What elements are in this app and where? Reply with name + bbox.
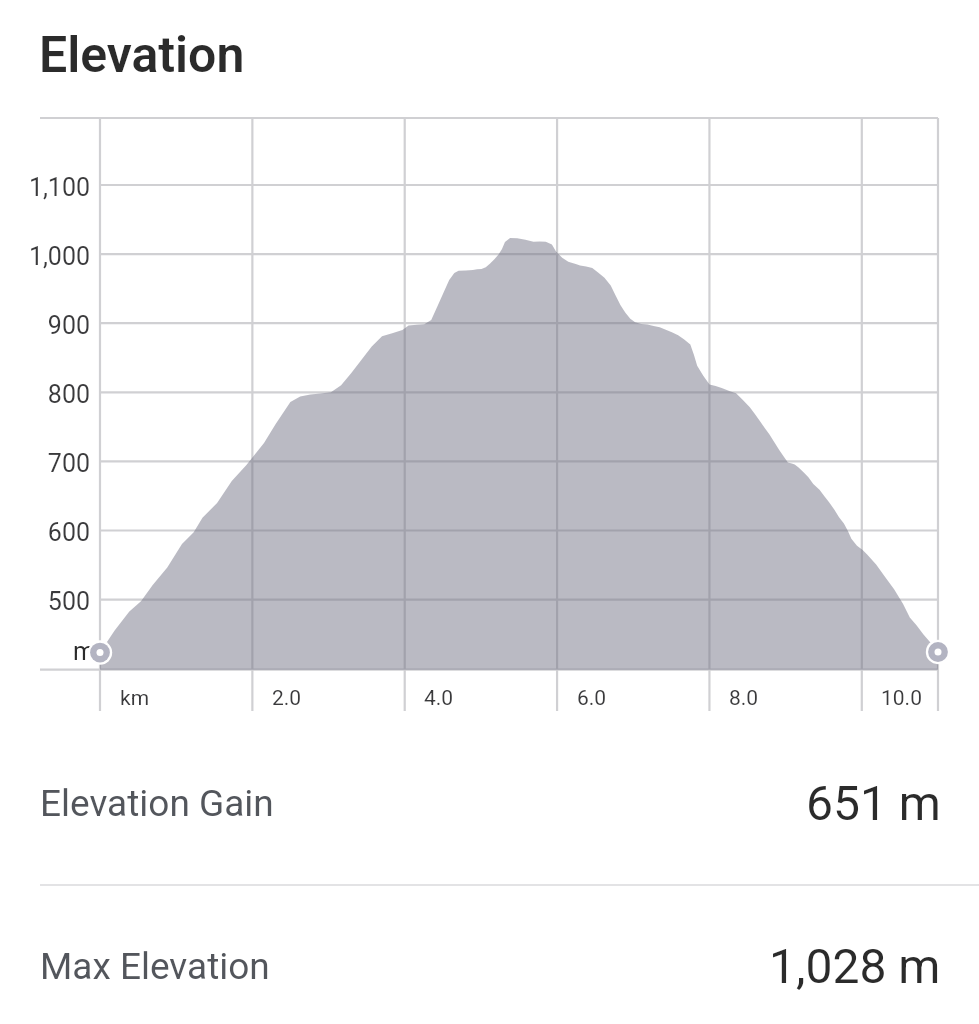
button[interactable]: Elevation Gain [0,723,979,884]
staticText: 6.0 [577,686,607,711]
staticText: 900 [0,311,90,340]
button[interactable]: Max Elevation [0,886,979,1024]
button[interactable]: Elevation profile chart [0,108,979,722]
staticText: m [0,637,95,666]
staticText: 700 [0,449,90,478]
staticText: 651 m [806,775,941,831]
staticText: 8.0 [729,686,759,711]
staticText: Elevation Gain [40,782,274,825]
staticText: 800 [0,380,90,409]
staticText: Elevation [39,26,245,85]
staticText: Max Elevation [40,945,270,988]
staticText: 2.0 [272,686,302,711]
staticText: 500 [0,587,90,616]
staticText: 1,100 [0,173,90,202]
staticText: km [120,686,150,711]
staticText: 600 [0,518,90,547]
staticText: 4.0 [424,686,454,711]
staticText: 10.0 [881,686,922,711]
staticText: 1,028 m [769,938,941,994]
staticText: 1,000 [0,242,90,271]
